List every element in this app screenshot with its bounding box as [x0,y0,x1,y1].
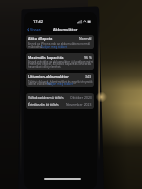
staticText: Ennek az iPhone-nak az akkumulátora norm… [28,42,91,46]
button[interactable]: Maximális kapacitás [26,53,94,70]
staticText: Váltakozóáramú töltés [28,95,64,100]
button[interactable]: Lítiumion-akkumulátor [26,73,94,87]
staticText: értékéhez képest. A kisebb kapacitás kev… [28,62,92,66]
staticText: Akkumulátor [53,27,78,32]
button[interactable]: Vissza [26,27,42,32]
staticText: Töltési ciklusok, hőmérséklet és egyéb t… [28,80,93,84]
staticText: használati időt jelenthet. [28,65,62,69]
staticText: Akku állapota [28,36,53,41]
staticText: Ennek mértéke az akkumulátor új korában … [28,60,93,64]
staticText: November 2023 [66,102,92,107]
staticText: 343 [85,74,92,79]
staticText: Maximális kapacitás [28,55,64,60]
button[interactable]: Akku állapota [26,35,94,49]
staticText: idővel csökkentik. [28,82,52,86]
staticText: működésű. [28,45,44,49]
button[interactable]: Váltakozóáramú töltés [26,93,94,109]
staticText: Normál [79,36,92,41]
staticText: Tudjon meg többet [41,45,67,49]
staticText: 96 % [84,55,92,60]
staticText: 17:42 [33,19,43,24]
staticText: Vissza [30,27,41,32]
staticText: Érintkezőn át töltés [28,102,59,107]
staticText: Október 2023 [70,95,92,100]
staticText: Lítiumion-akkumulátor [28,74,69,79]
staticText: Tudjon meg többet [47,82,73,86]
